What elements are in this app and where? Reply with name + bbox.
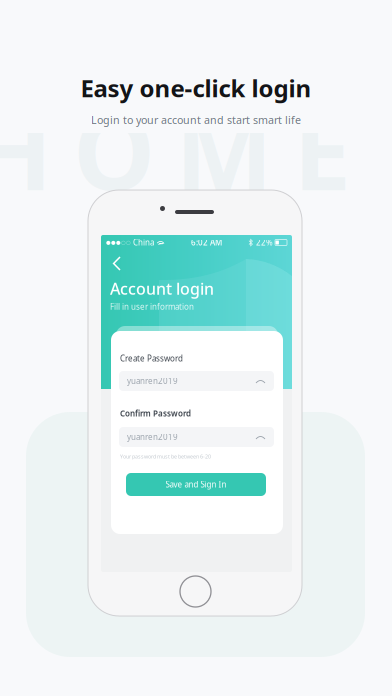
staticText: Save and Sign In: [165, 479, 226, 490]
staticText: Confirm Password: [120, 408, 191, 419]
staticText: HOME: [0, 81, 351, 219]
button[interactable]: Save and Sign In: [126, 473, 266, 496]
staticText: Create Password: [120, 353, 183, 364]
staticText: 6:02 AM: [191, 237, 222, 248]
staticText: Your password must be between 6-20: [120, 453, 211, 460]
staticText: Account login: [110, 278, 214, 299]
staticText: Login to your account and start smart li…: [91, 113, 301, 127]
staticText: Fill in user information: [110, 301, 194, 312]
staticText: ○○: [121, 239, 131, 246]
staticText: China: [131, 237, 156, 248]
staticText: 22%: [254, 237, 275, 248]
staticText: ●●●: [106, 239, 121, 246]
button[interactable]: Back: [107, 251, 127, 276]
staticText: Easy one-click login: [80, 72, 311, 104]
staticText: yuanren2019: [127, 376, 178, 386]
staticText: yuanren2019: [127, 432, 178, 442]
